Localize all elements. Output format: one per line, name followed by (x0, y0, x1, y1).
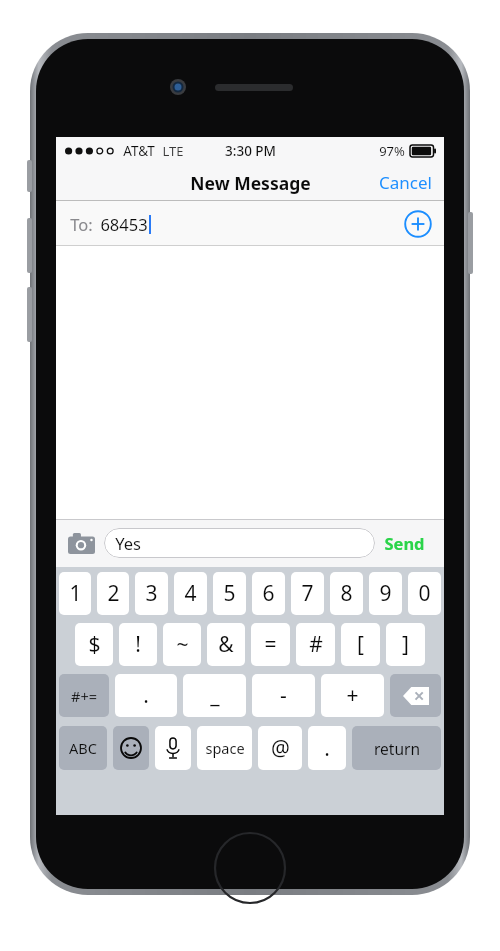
staticText: New Message (190, 171, 311, 195)
button[interactable]: - (252, 674, 315, 717)
button[interactable]: ~ (163, 623, 201, 666)
button[interactable]: 3 (135, 572, 168, 615)
button[interactable]: Take photo (66, 528, 96, 558)
staticText: 7 (301, 579, 314, 608)
staticText: space (205, 738, 245, 758)
button[interactable]: . (115, 674, 177, 717)
staticText: 9 (379, 579, 392, 608)
button[interactable]: Yes (104, 528, 375, 558)
button[interactable]: + (321, 674, 384, 717)
staticText: #+= (71, 686, 97, 706)
button[interactable]: ABC (59, 726, 107, 770)
staticText: 0 (418, 579, 431, 608)
button[interactable]: @ (258, 726, 302, 770)
button[interactable]: # (296, 623, 335, 666)
button[interactable]: Backspace (390, 674, 441, 717)
staticText: Cancel (379, 171, 432, 194)
staticText: 2 (107, 579, 120, 608)
staticText: 68453 (100, 213, 148, 235)
button[interactable]: 4 (174, 572, 207, 615)
staticText: Send (384, 532, 425, 554)
staticText: 6 (262, 579, 275, 608)
staticText: = (264, 630, 277, 659)
button[interactable]: 5 (213, 572, 246, 615)
button[interactable]: 6 (252, 572, 285, 615)
staticText: 1 (69, 579, 82, 608)
button[interactable]: 7 (291, 572, 324, 615)
button[interactable]: 2 (97, 572, 129, 615)
staticText: AT&T (123, 142, 155, 160)
staticText: ~ (176, 630, 189, 659)
staticText: 3 (145, 579, 158, 608)
staticText: 3:30 PM (225, 142, 276, 160)
button[interactable]: ! (119, 623, 157, 666)
staticText: ] (402, 630, 409, 659)
button[interactable]: 0 (408, 572, 441, 615)
button[interactable]: [ (341, 623, 380, 666)
staticText: [ (357, 630, 364, 659)
staticText: return (374, 738, 420, 759)
staticText: # (309, 630, 323, 659)
button[interactable]: . (308, 726, 346, 770)
button[interactable]: = (251, 623, 290, 666)
staticText: 4 (184, 579, 197, 608)
button[interactable]: _ (183, 674, 246, 717)
button[interactable]: $ (75, 623, 113, 666)
button[interactable]: space (197, 726, 252, 770)
staticText: 5 (223, 579, 236, 608)
button[interactable]: #+= (59, 674, 109, 717)
staticText: To: (70, 213, 93, 235)
button[interactable]: Send (375, 526, 434, 560)
staticText: ! (135, 630, 141, 659)
staticText: 97% (379, 142, 405, 160)
staticText: - (280, 681, 287, 710)
staticText: Yes (115, 532, 141, 554)
button[interactable]: 1 (59, 572, 91, 615)
button[interactable]: ] (386, 623, 425, 666)
button[interactable]: & (207, 623, 245, 666)
staticText: . (143, 681, 149, 710)
button[interactable]: Add contact (404, 210, 432, 238)
staticText: ABC (69, 738, 97, 758)
button[interactable]: Emoji (113, 726, 149, 770)
staticText: 8 (340, 579, 353, 608)
staticText: . (324, 734, 330, 763)
staticText: @ (271, 734, 290, 763)
staticText: LTE (162, 142, 184, 160)
button[interactable]: Dictation (155, 726, 191, 770)
staticText: _ (210, 681, 220, 710)
staticText: & (218, 630, 234, 659)
staticText: + (346, 681, 359, 710)
button[interactable]: 8 (330, 572, 363, 615)
button[interactable]: return (352, 726, 441, 770)
staticText: $ (88, 630, 101, 659)
button[interactable]: 9 (369, 572, 402, 615)
button[interactable]: Cancel (367, 165, 444, 200)
